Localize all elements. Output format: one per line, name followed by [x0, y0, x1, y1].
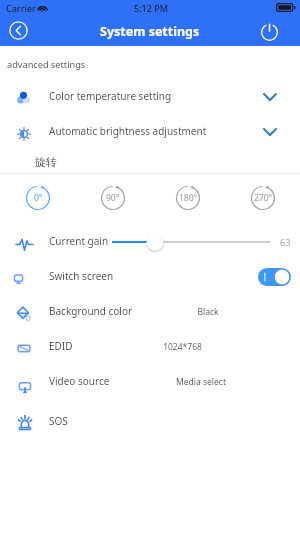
- staticText: Media select: [176, 376, 226, 388]
- staticText: 5:12 PM: [134, 2, 168, 14]
- staticText: 90°: [106, 192, 120, 204]
- staticText: 180°: [179, 192, 198, 204]
- staticText: 63: [280, 236, 291, 248]
- staticText: SOS: [49, 414, 68, 428]
- staticText: Switch screen: [49, 269, 114, 283]
- staticText: System settings: [100, 23, 200, 40]
- button[interactable]: [0, 365, 300, 400]
- button[interactable]: [0, 80, 300, 115]
- button[interactable]: Expand: [258, 121, 281, 143]
- button[interactable]: 180°: [174, 184, 202, 212]
- button[interactable]: Power: [256, 18, 282, 44]
- button[interactable]: 0°: [24, 184, 52, 212]
- staticText: EDID: [49, 339, 73, 353]
- button[interactable]: [0, 330, 300, 365]
- staticText: advanced settings: [7, 58, 86, 71]
- staticText: 1024*768: [163, 341, 202, 353]
- button[interactable]: 270°: [249, 184, 277, 212]
- button[interactable]: [0, 260, 300, 295]
- button[interactable]: Switch screen toggle: [258, 268, 291, 286]
- staticText: Background color: [49, 304, 133, 318]
- staticText: 0°: [34, 192, 43, 204]
- button[interactable]: Expand: [258, 86, 281, 108]
- staticText: 旋转: [35, 155, 57, 169]
- button[interactable]: [0, 295, 300, 330]
- button[interactable]: Current gain slider: [110, 231, 275, 253]
- staticText: Current gain: [49, 234, 109, 248]
- staticText: Automatic brightness adjustment: [49, 124, 207, 138]
- button[interactable]: 90°: [99, 184, 127, 212]
- staticText: Black: [197, 306, 219, 318]
- staticText: Video source: [49, 374, 110, 388]
- staticText: Color temperature setting: [49, 89, 172, 103]
- button[interactable]: Back: [5, 17, 31, 43]
- button[interactable]: [0, 115, 300, 150]
- staticText: Carrier: [6, 2, 36, 14]
- button[interactable]: [0, 405, 300, 440]
- staticText: 270°: [254, 192, 273, 204]
